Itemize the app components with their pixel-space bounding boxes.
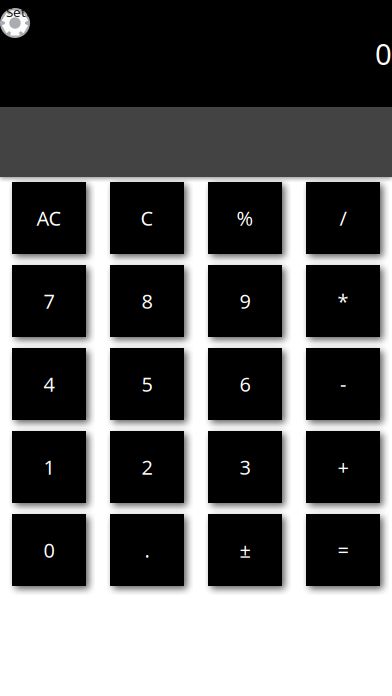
button[interactable]: .	[110, 514, 184, 586]
button[interactable]: 8	[110, 265, 184, 337]
button[interactable]: +	[306, 431, 380, 503]
staticText: AC	[36, 205, 61, 231]
button[interactable]: /	[306, 182, 380, 254]
staticText: /	[339, 205, 346, 231]
button[interactable]: 1	[12, 431, 86, 503]
staticText: +	[337, 454, 348, 480]
staticText: 2	[141, 454, 152, 480]
staticText: 1	[43, 454, 54, 480]
staticText: ±	[239, 537, 250, 563]
staticText: 0	[375, 34, 392, 73]
staticText: %	[236, 205, 253, 231]
button[interactable]: %	[208, 182, 282, 254]
button[interactable]: 3	[208, 431, 282, 503]
button[interactable]: 2	[110, 431, 184, 503]
staticText: =	[337, 537, 348, 563]
staticText: 6	[239, 371, 250, 397]
button[interactable]: 6	[208, 348, 282, 420]
staticText: 8	[141, 288, 152, 314]
button[interactable]: -	[306, 348, 380, 420]
button[interactable]: Settings	[0, 0, 31, 38]
staticText: 7	[43, 288, 54, 314]
button[interactable]: =	[306, 514, 380, 586]
staticText: C	[140, 205, 153, 231]
button[interactable]: C	[110, 182, 184, 254]
staticText: 9	[239, 288, 250, 314]
button[interactable]: 4	[12, 348, 86, 420]
staticText: 0	[43, 537, 54, 563]
button[interactable]: 5	[110, 348, 184, 420]
staticText: 5	[141, 371, 152, 397]
button[interactable]: AC	[12, 182, 86, 254]
button[interactable]: ±	[208, 514, 282, 586]
button[interactable]: 9	[208, 265, 282, 337]
staticText: 3	[239, 454, 250, 480]
staticText: 4	[43, 371, 54, 397]
staticText: .	[144, 537, 149, 563]
button[interactable]: 0	[12, 514, 86, 586]
button[interactable]: *	[306, 265, 380, 337]
staticText: -	[340, 371, 346, 397]
button[interactable]: 7	[12, 265, 86, 337]
staticText: Sett	[6, 3, 31, 21]
staticText: *	[337, 288, 348, 314]
